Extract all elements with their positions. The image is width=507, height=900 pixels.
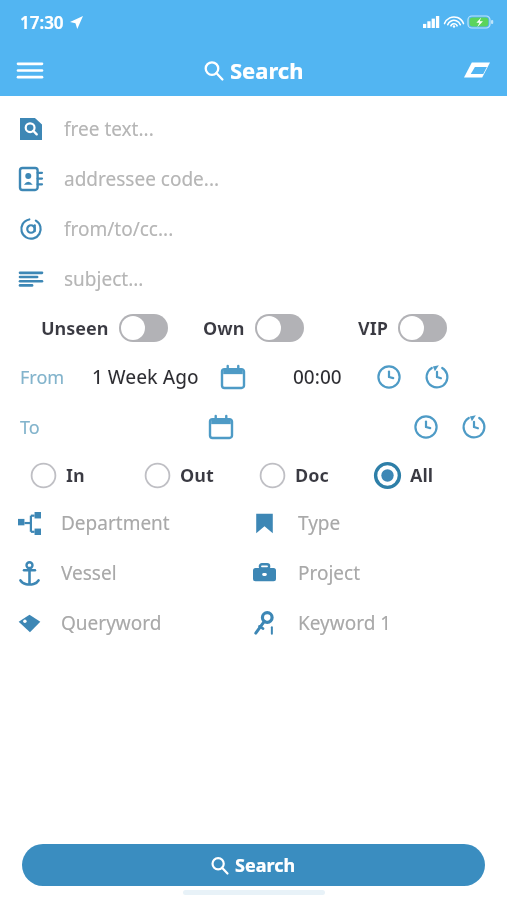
staticText: Search <box>235 853 296 878</box>
staticText: Queryword <box>61 610 162 636</box>
staticText: Search <box>230 55 304 85</box>
button[interactable]: addressee code... <box>0 154 507 204</box>
staticText: Project <box>298 560 361 586</box>
button[interactable]: Unseen <box>30 314 179 342</box>
button[interactable]: Pick to date <box>206 412 236 442</box>
button[interactable]: Pick from time <box>374 362 404 392</box>
staticText: Keyword 1 <box>298 610 392 636</box>
staticText: 17:30 <box>20 11 64 34</box>
button[interactable]: Pick from date <box>218 362 248 392</box>
button[interactable]: All <box>374 462 489 489</box>
staticText: Out <box>180 463 214 488</box>
staticText: subject... <box>64 266 144 292</box>
staticText: To <box>20 415 40 440</box>
button[interactable]: To history <box>459 412 489 442</box>
button[interactable]: from/to/cc... <box>0 204 507 254</box>
staticText: free text... <box>64 116 154 142</box>
button[interactable]: Department <box>0 498 253 548</box>
button[interactable]: Out <box>144 462 259 489</box>
button[interactable]: Menu <box>8 48 52 92</box>
button[interactable]: Doc <box>259 462 374 489</box>
button[interactable]: VIP <box>328 314 477 342</box>
staticText: Department <box>61 510 170 536</box>
staticText: From <box>20 365 65 390</box>
button[interactable]: Clear <box>455 48 499 92</box>
button[interactable]: From history <box>422 362 452 392</box>
button[interactable]: Queryword <box>0 598 253 648</box>
button[interactable]: Vessel <box>0 548 253 598</box>
button[interactable]: Type <box>253 498 507 548</box>
button[interactable]: Own <box>179 314 328 342</box>
staticText: Own <box>203 316 245 341</box>
button[interactable]: Search <box>22 844 485 886</box>
button[interactable]: Project <box>253 548 507 598</box>
staticText: Unseen <box>41 316 109 341</box>
staticText: from/to/cc... <box>64 216 174 242</box>
button[interactable]: In <box>30 462 144 489</box>
staticText: Doc <box>295 463 329 488</box>
staticText: All <box>410 463 434 488</box>
staticText: Vessel <box>61 560 117 586</box>
staticText: Type <box>298 510 341 536</box>
staticText: addressee code... <box>64 166 220 192</box>
staticText: In <box>66 463 85 488</box>
staticText: VIP <box>358 316 388 341</box>
button[interactable]: Pick to time <box>411 412 441 442</box>
button[interactable]: free text... <box>0 104 507 154</box>
button[interactable]: Keyword 1 <box>253 598 507 648</box>
staticText: 00:00 <box>293 364 342 390</box>
button[interactable]: subject... <box>0 254 507 304</box>
staticText: 1 Week Ago <box>92 364 199 390</box>
